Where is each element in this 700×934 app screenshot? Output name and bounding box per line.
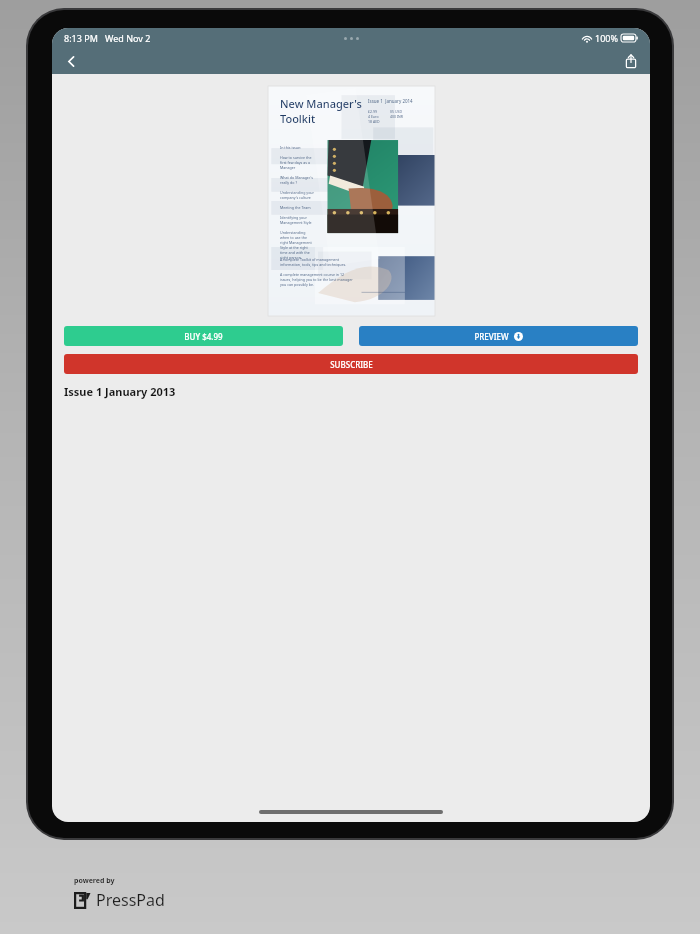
- staticText: PREVIEW: [474, 331, 509, 342]
- staticText: What do Manager's: [280, 175, 313, 180]
- staticText: right person: [280, 255, 301, 260]
- staticText: Issue 1 January 2013: [64, 384, 176, 399]
- staticText: SUBSCRIBE: [330, 359, 373, 370]
- staticText: 18 AED: [368, 119, 380, 124]
- staticText: 100%: [595, 32, 618, 44]
- staticText: $5 USD: [390, 109, 402, 114]
- staticText: A complete management course in 12: [280, 272, 345, 277]
- staticText: How to survive the: [280, 155, 312, 160]
- button[interactable]: PREVIEW: [359, 326, 638, 346]
- staticText: really do ?: [280, 180, 297, 185]
- staticText: Wed Nov 2: [105, 32, 151, 44]
- staticText: Toolkit: [280, 111, 316, 126]
- staticText: BUY $4.99: [184, 331, 223, 342]
- staticText: In this issue:: [280, 145, 302, 150]
- staticText: powered by: [74, 876, 115, 886]
- staticText: company's culture: [280, 195, 311, 200]
- staticText: Issue 1 January 2014: [368, 98, 413, 104]
- staticText: Style at the right: [280, 245, 308, 250]
- staticText: New Manager's: [280, 96, 362, 111]
- staticText: Meeting the Team: [280, 205, 311, 210]
- staticText: issues, helping you to be the best manag…: [280, 277, 353, 282]
- staticText: Understanding your: [280, 190, 315, 195]
- staticText: £2.99: [368, 109, 377, 114]
- staticText: Management Style: [280, 220, 312, 225]
- button[interactable]: SUBSCRIBE: [64, 354, 638, 374]
- button[interactable]: BUY $4.99: [64, 326, 343, 346]
- button[interactable]: Back: [58, 48, 84, 74]
- staticText: 400 INR: [390, 114, 403, 119]
- staticText: when to use the: [280, 235, 308, 240]
- staticText: first few days as a: [280, 160, 310, 165]
- staticText: information, tools, tips and techniques.: [280, 262, 347, 267]
- button[interactable]: Share: [618, 48, 644, 74]
- staticText: PressPad: [96, 889, 165, 911]
- staticText: time and with the: [280, 250, 310, 255]
- staticText: 8:13 PM: [64, 32, 98, 44]
- staticText: Understanding: [280, 230, 306, 235]
- staticText: Manager: [280, 165, 296, 170]
- staticText: 4 Euro: [368, 114, 379, 119]
- staticText: right Management: [280, 240, 312, 245]
- staticText: A complete Toolkit of management: [280, 257, 340, 262]
- staticText: you can possibly be.: [280, 282, 314, 287]
- button[interactable]: New Manager's: [268, 86, 435, 316]
- staticText: Identifying your: [280, 215, 307, 220]
